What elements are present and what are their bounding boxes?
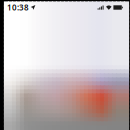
staticText: 10:38 [7,2,29,13]
